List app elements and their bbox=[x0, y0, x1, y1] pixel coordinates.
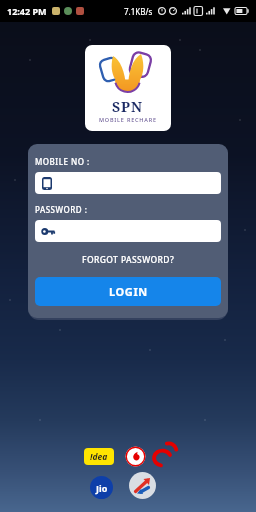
staticText: FORGOT PASSWORD? bbox=[82, 254, 175, 266]
button[interactable] bbox=[35, 172, 221, 194]
staticText: PASSWORD : bbox=[35, 204, 88, 215]
button[interactable] bbox=[35, 220, 221, 242]
button[interactable] bbox=[151, 442, 178, 469]
staticText: !dea bbox=[90, 451, 108, 463]
button[interactable] bbox=[125, 446, 146, 467]
staticText: MOBILE RECHARE bbox=[99, 116, 157, 123]
button[interactable]: !dea bbox=[84, 448, 114, 465]
button[interactable]: Jio bbox=[90, 476, 113, 499]
button[interactable]: LOGIN bbox=[35, 277, 221, 306]
staticText: MOBILE NO : bbox=[35, 156, 90, 167]
button[interactable] bbox=[129, 472, 156, 499]
button[interactable]: FORGOT PASSWORD? bbox=[35, 254, 221, 266]
staticText: SPN bbox=[112, 97, 144, 116]
staticText: LOGIN bbox=[109, 284, 148, 299]
staticText: 7.1KB/s bbox=[124, 6, 153, 17]
staticText: 12:42 PM bbox=[7, 5, 47, 17]
staticText: Jio bbox=[96, 482, 108, 494]
